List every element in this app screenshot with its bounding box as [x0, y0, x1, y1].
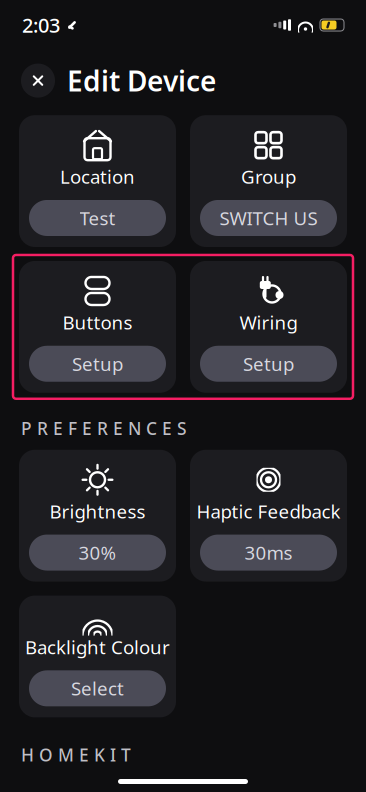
button[interactable]: Setup [200, 346, 337, 382]
button[interactable]: SWITCH US [200, 200, 337, 236]
button[interactable]: Close [21, 64, 55, 98]
staticText: P R E F E R E N C E S [21, 417, 187, 440]
button[interactable]: Wiring [190, 261, 347, 393]
button[interactable]: Location [19, 115, 176, 247]
staticText: SWITCH US [219, 206, 317, 230]
button[interactable]: Buttons [19, 261, 176, 393]
button[interactable]: 30ms [200, 535, 337, 571]
staticText: Location [60, 164, 135, 189]
staticText: Setup [243, 351, 294, 376]
button[interactable]: Test [29, 200, 166, 236]
staticText: 30% [78, 540, 116, 565]
staticText: H O M E K I T [21, 743, 131, 766]
button[interactable]: Haptic Feedback [190, 450, 347, 582]
button[interactable]: Backlight Colour [19, 596, 176, 717]
staticText: Brightness [49, 499, 145, 524]
staticText: Edit Device [67, 62, 216, 99]
button[interactable]: Group [190, 115, 347, 247]
staticText: Wiring [239, 310, 297, 335]
staticText: 2:03 [22, 12, 60, 38]
button[interactable]: Brightness [19, 450, 176, 582]
staticText: Setup [72, 351, 123, 376]
button[interactable]: Setup [29, 346, 166, 382]
staticText: 30ms [244, 540, 292, 565]
button[interactable]: 30% [29, 535, 166, 571]
staticText: Buttons [62, 310, 132, 335]
staticText: Test [79, 206, 115, 230]
staticText: Haptic Feedback [196, 499, 340, 524]
staticText: Select [71, 676, 124, 701]
staticText: Group [241, 164, 296, 189]
button[interactable]: Select [29, 670, 166, 706]
staticText: Backlight Colour [25, 635, 170, 659]
